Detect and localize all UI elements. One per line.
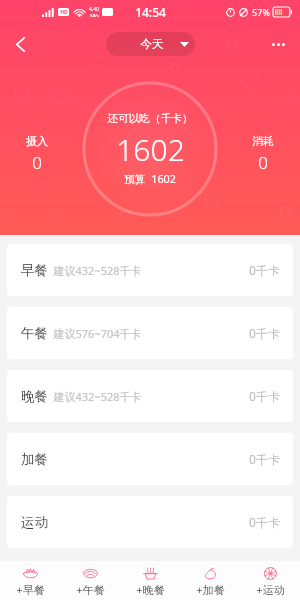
staticText: 消耗 xyxy=(252,134,274,148)
staticText: 运动 xyxy=(21,514,48,531)
staticText: 早餐 xyxy=(21,262,48,279)
button[interactable]: +早餐 xyxy=(0,561,60,600)
staticText: 建议432~528千卡 xyxy=(53,389,142,404)
staticText: 0千卡 xyxy=(249,451,280,467)
staticText: 1602 xyxy=(116,129,185,170)
button[interactable]: +加餐 xyxy=(180,561,240,600)
staticText: +加餐 xyxy=(196,582,225,597)
staticText: 0 xyxy=(258,151,268,174)
staticText: 预算 1602 xyxy=(124,171,176,186)
staticText: 0 xyxy=(32,151,42,174)
staticText: 14:54 xyxy=(135,4,166,20)
button[interactable]: +午餐 xyxy=(60,561,120,600)
button[interactable]: 今天 xyxy=(106,32,195,56)
button[interactable]: 午餐 xyxy=(7,307,293,359)
staticText: +午餐 xyxy=(76,582,105,597)
button[interactable]: 运动 xyxy=(7,496,293,548)
staticText: 建议432~528千卡 xyxy=(53,263,142,278)
button[interactable]: +晚餐 xyxy=(120,561,180,600)
staticText: +晚餐 xyxy=(136,582,165,597)
staticText: 0千卡 xyxy=(249,325,280,341)
staticText: 还可以吃（千卡） xyxy=(107,112,193,125)
button[interactable]: 早餐 xyxy=(7,244,293,296)
staticText: 晚餐 xyxy=(21,388,48,405)
staticText: 0千卡 xyxy=(249,262,280,278)
staticText: 加餐 xyxy=(21,451,48,468)
staticText: 建议576~704千卡 xyxy=(53,326,142,341)
button[interactable]: +运动 xyxy=(240,561,300,600)
staticText: 4.40 xyxy=(89,6,99,13)
staticText: +运动 xyxy=(256,582,285,597)
button[interactable]: 加餐 xyxy=(7,433,293,485)
staticText: 0千卡 xyxy=(249,514,280,530)
staticText: 57% xyxy=(252,6,270,18)
staticText: 今天 xyxy=(140,37,164,52)
staticText: +早餐 xyxy=(16,582,45,597)
staticText: HD xyxy=(60,9,68,16)
staticText: KB/s xyxy=(90,13,99,18)
staticText: 午餐 xyxy=(21,325,48,342)
button[interactable]: More options xyxy=(264,30,292,58)
staticText: 摄入 xyxy=(26,134,48,148)
button[interactable]: 晚餐 xyxy=(7,370,293,422)
staticText: 0千卡 xyxy=(249,388,280,404)
button[interactable]: Back xyxy=(6,30,34,58)
